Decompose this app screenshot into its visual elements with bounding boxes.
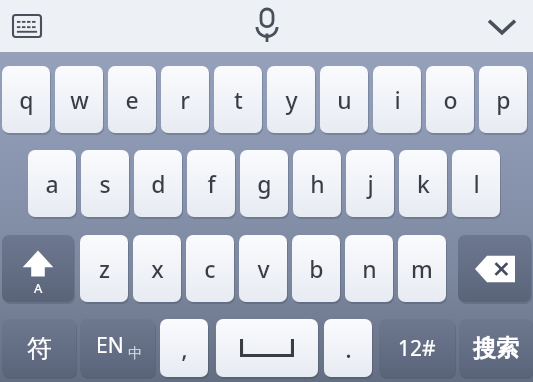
- button[interactable]: Hide keyboard: [480, 6, 524, 46]
- staticText: y: [285, 84, 298, 115]
- button[interactable]: Search: [459, 319, 533, 377]
- staticText: w: [70, 84, 89, 115]
- button[interactable]: q: [2, 66, 50, 133]
- button[interactable]: d: [134, 150, 182, 217]
- staticText: e: [125, 84, 139, 115]
- button[interactable]: l: [452, 150, 500, 217]
- button[interactable]: z: [80, 235, 128, 302]
- button[interactable]: Voice input: [247, 4, 287, 48]
- staticText: 符: [27, 333, 52, 364]
- staticText: h: [310, 168, 325, 199]
- button[interactable]: x: [133, 235, 181, 302]
- staticText: .: [345, 332, 352, 365]
- button[interactable]: Numbers and symbols: [379, 319, 455, 377]
- staticText: b: [309, 253, 324, 284]
- staticText: r: [180, 84, 190, 115]
- button[interactable]: c: [186, 235, 234, 302]
- staticText: EN: [96, 331, 124, 360]
- button[interactable]: w: [55, 66, 103, 133]
- button[interactable]: p: [479, 66, 527, 133]
- button[interactable]: f: [187, 150, 235, 217]
- button[interactable]: j: [346, 150, 394, 217]
- staticText: s: [99, 168, 111, 199]
- button[interactable]: Symbols: [2, 319, 76, 377]
- staticText: a: [45, 168, 59, 199]
- button[interactable]: .: [324, 319, 372, 377]
- button[interactable]: Backspace: [458, 235, 531, 302]
- staticText: q: [19, 84, 34, 115]
- button[interactable]: r: [161, 66, 209, 133]
- button[interactable]: i: [373, 66, 421, 133]
- staticText: j: [367, 168, 374, 199]
- staticText: m: [411, 253, 433, 284]
- button[interactable]: y: [267, 66, 315, 133]
- button[interactable]: b: [292, 235, 340, 302]
- button[interactable]: o: [426, 66, 474, 133]
- staticText: ,: [181, 332, 188, 365]
- staticText: g: [257, 168, 272, 199]
- staticText: i: [394, 84, 401, 115]
- button[interactable]: Keyboard layout: [8, 8, 46, 44]
- button[interactable]: h: [293, 150, 341, 217]
- button[interactable]: Space: [216, 319, 318, 377]
- button[interactable]: m: [398, 235, 446, 302]
- button[interactable]: Shift: [2, 235, 74, 302]
- button[interactable]: n: [345, 235, 393, 302]
- staticText: k: [417, 168, 430, 199]
- button[interactable]: v: [239, 235, 287, 302]
- button[interactable]: a: [28, 150, 76, 217]
- staticText: u: [337, 84, 352, 115]
- staticText: x: [151, 253, 164, 284]
- button[interactable]: s: [81, 150, 129, 217]
- button[interactable]: k: [399, 150, 447, 217]
- staticText: l: [473, 168, 480, 199]
- staticText: 12#: [398, 334, 436, 363]
- staticText: n: [362, 253, 377, 284]
- button[interactable]: e: [108, 66, 156, 133]
- staticText: o: [443, 84, 458, 115]
- staticText: f: [207, 168, 216, 199]
- button[interactable]: ,: [160, 319, 208, 377]
- staticText: z: [99, 253, 110, 284]
- staticText: 搜索: [473, 334, 519, 363]
- staticText: v: [257, 253, 270, 284]
- staticText: A: [34, 279, 43, 297]
- staticText: p: [496, 84, 511, 115]
- button[interactable]: g: [240, 150, 288, 217]
- staticText: t: [234, 84, 243, 115]
- staticText: d: [151, 168, 166, 199]
- button[interactable]: t: [214, 66, 262, 133]
- staticText: 中: [128, 345, 142, 363]
- button[interactable]: u: [320, 66, 368, 133]
- button[interactable]: Language English Chinese: [80, 319, 155, 377]
- staticText: c: [204, 253, 216, 284]
